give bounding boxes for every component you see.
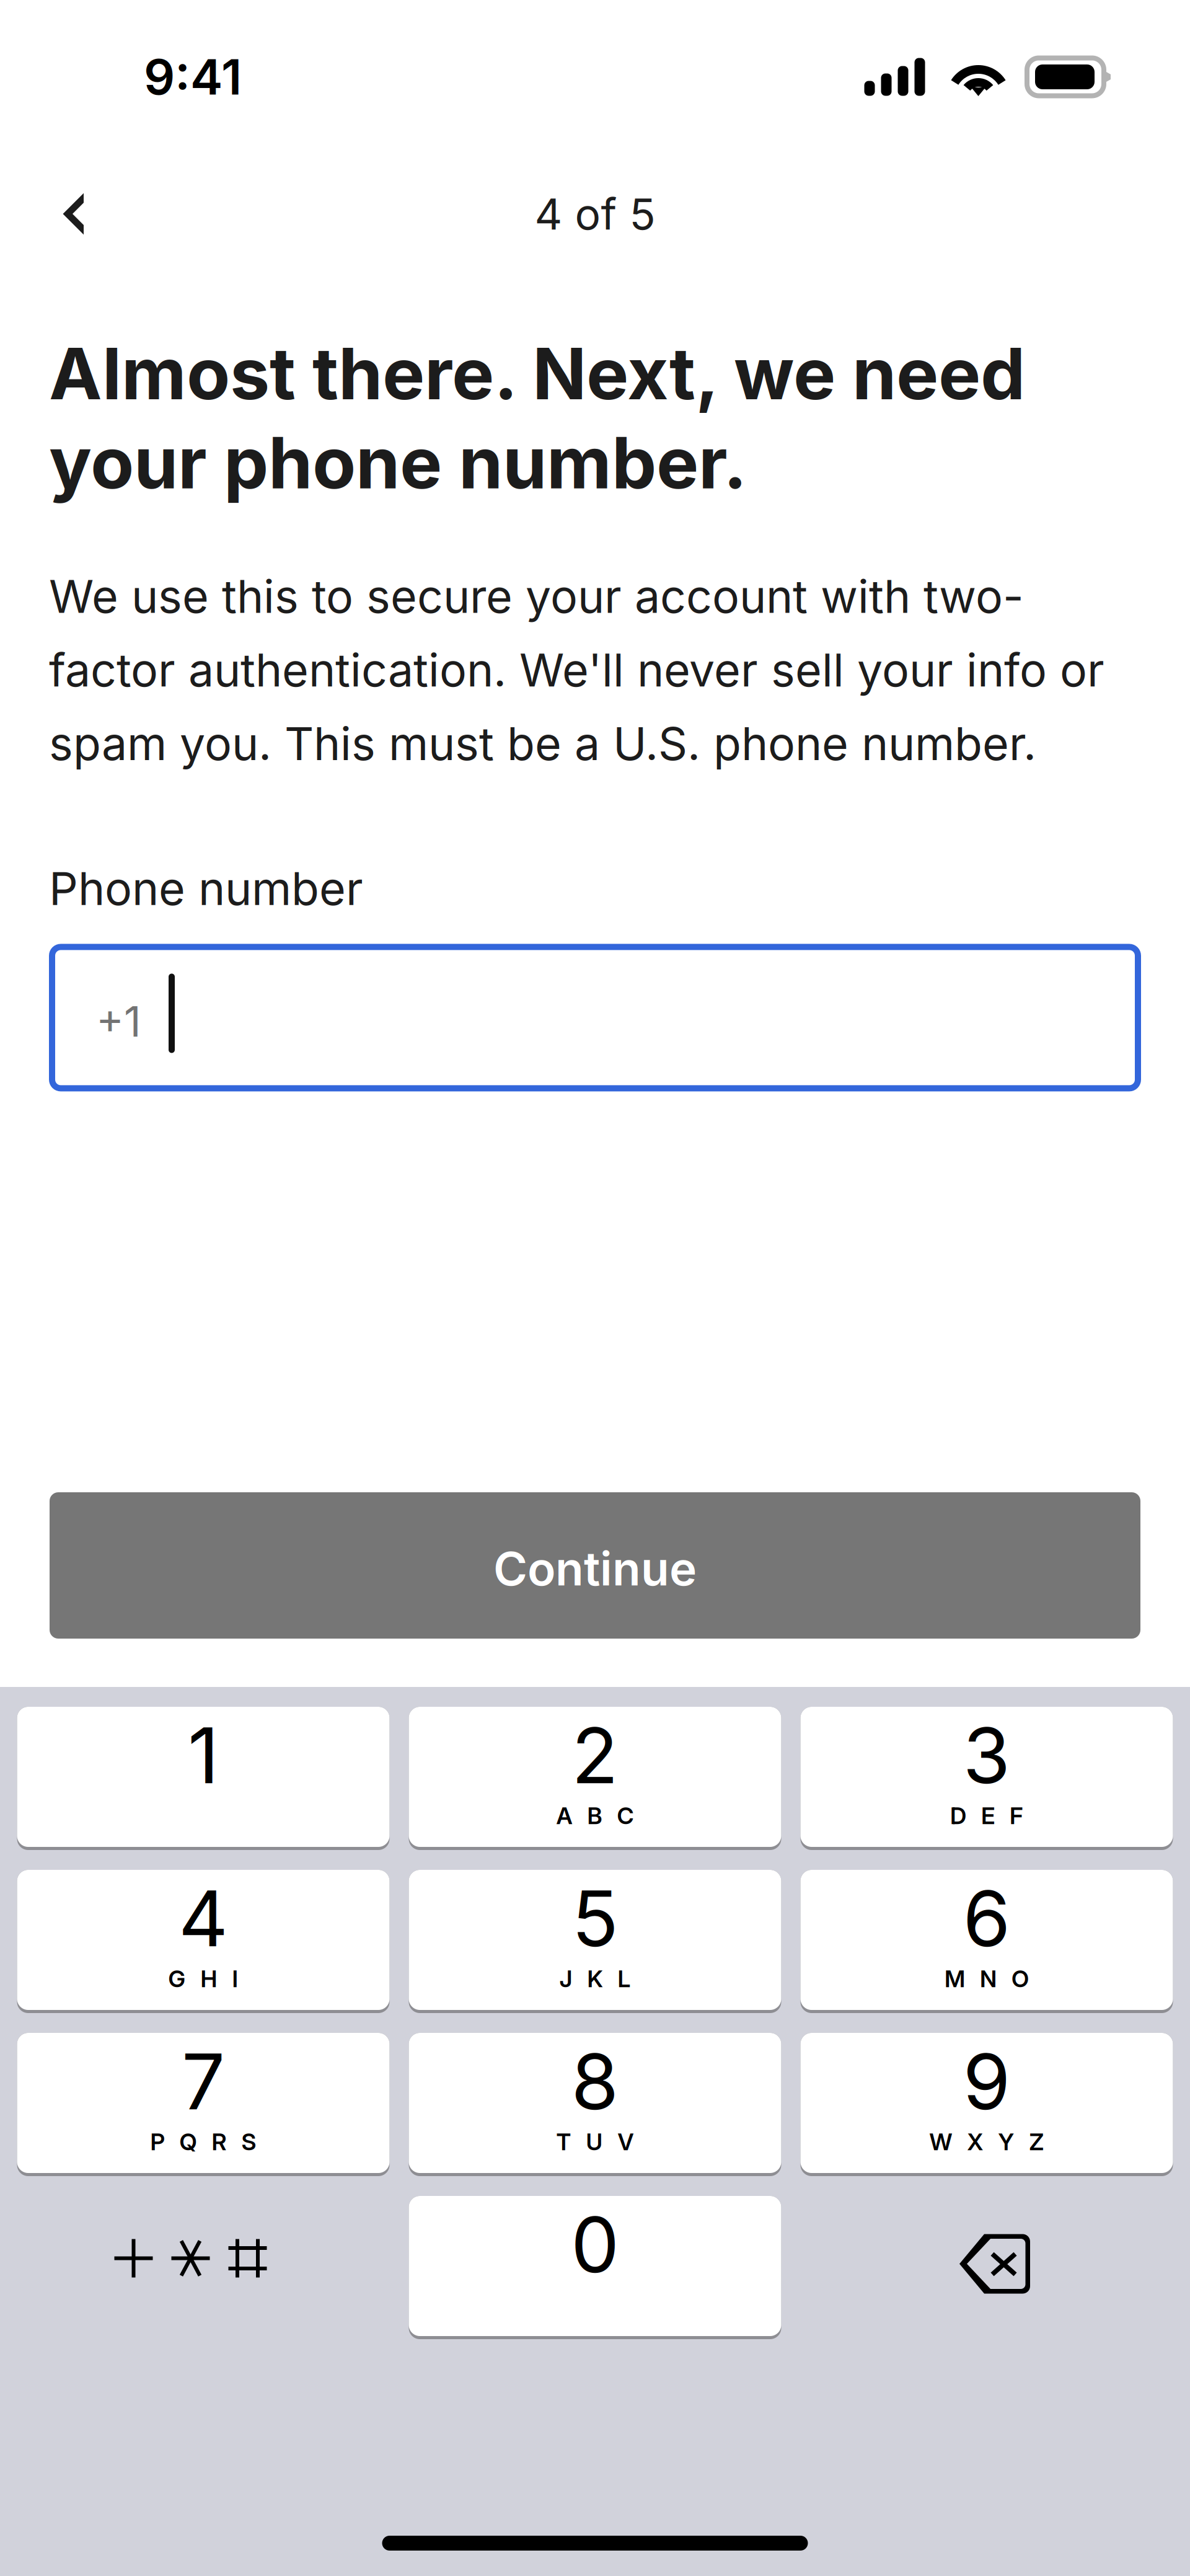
staticText: MNO xyxy=(945,1965,1029,1993)
staticText: WXYZ xyxy=(929,2128,1044,2156)
staticText: 7 xyxy=(182,2035,225,2128)
staticText: 9 xyxy=(963,2035,1011,2128)
button[interactable]: 6 xyxy=(800,1870,1173,2013)
staticText: DEF xyxy=(950,1802,1023,1830)
staticText: 6 xyxy=(963,1872,1011,1965)
button[interactable]: Symbols xyxy=(17,2196,390,2339)
staticText: 5 xyxy=(572,1872,618,1965)
button[interactable]: Back xyxy=(24,172,121,255)
staticText: 4 xyxy=(178,1872,228,1965)
staticText: Almost there. Next, we need your phone n… xyxy=(49,330,1025,506)
button[interactable]: 0 xyxy=(409,2196,781,2339)
staticText: PQRS xyxy=(150,2128,256,2156)
staticText: 3 xyxy=(963,1709,1011,1802)
button[interactable]: 7 xyxy=(17,2033,390,2176)
button[interactable]: 5 xyxy=(409,1870,781,2013)
staticText: 0 xyxy=(571,2198,619,2291)
staticText: 1 xyxy=(188,1709,219,1802)
staticText: 8 xyxy=(571,2035,619,2128)
button[interactable]: 4 xyxy=(17,1870,390,2013)
staticText: Phone number xyxy=(49,861,363,916)
staticText: +1 xyxy=(96,996,141,1047)
staticText: JKL xyxy=(559,1965,631,1993)
button[interactable]: 1 xyxy=(17,1707,390,1850)
button[interactable]: 2 xyxy=(409,1707,781,1850)
button[interactable]: Continue xyxy=(50,1492,1140,1639)
staticText: ABC xyxy=(556,1802,634,1830)
staticText: Continue xyxy=(493,1541,697,1597)
button[interactable]: 9 xyxy=(800,2033,1173,2176)
button[interactable]: 8 xyxy=(409,2033,781,2176)
button[interactable]: 3 xyxy=(800,1707,1173,1850)
staticText: GHI xyxy=(168,1965,238,1993)
staticText: We use this to secure your account with … xyxy=(49,569,1104,771)
staticText: 2 xyxy=(571,1709,619,1802)
button[interactable]: Delete xyxy=(800,2196,1173,2339)
staticText: 4 of 5 xyxy=(535,188,655,240)
staticText: 9:41 xyxy=(144,47,242,106)
staticText: TUV xyxy=(556,2128,634,2156)
